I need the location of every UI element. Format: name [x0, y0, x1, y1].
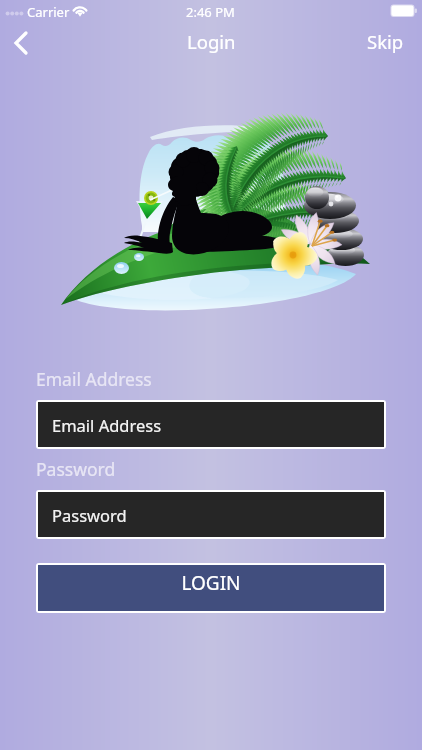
staticText: Email Address — [52, 414, 162, 436]
staticText: Login — [187, 29, 236, 54]
button[interactable]: Skip — [351, 19, 422, 68]
button[interactable]: Password — [38, 492, 384, 537]
staticText: Password — [36, 457, 116, 481]
staticText: Email Address — [36, 367, 152, 391]
staticText: Skip — [367, 29, 404, 54]
staticText: LOGIN — [181, 570, 241, 596]
button[interactable]: Email Address — [38, 402, 384, 447]
staticText: 2:46 PM — [186, 3, 235, 21]
staticText: Password — [52, 504, 127, 526]
staticText: Carrier — [27, 3, 70, 21]
button[interactable]: LOGIN — [38, 565, 384, 611]
button[interactable]: Back — [0, 20, 48, 68]
